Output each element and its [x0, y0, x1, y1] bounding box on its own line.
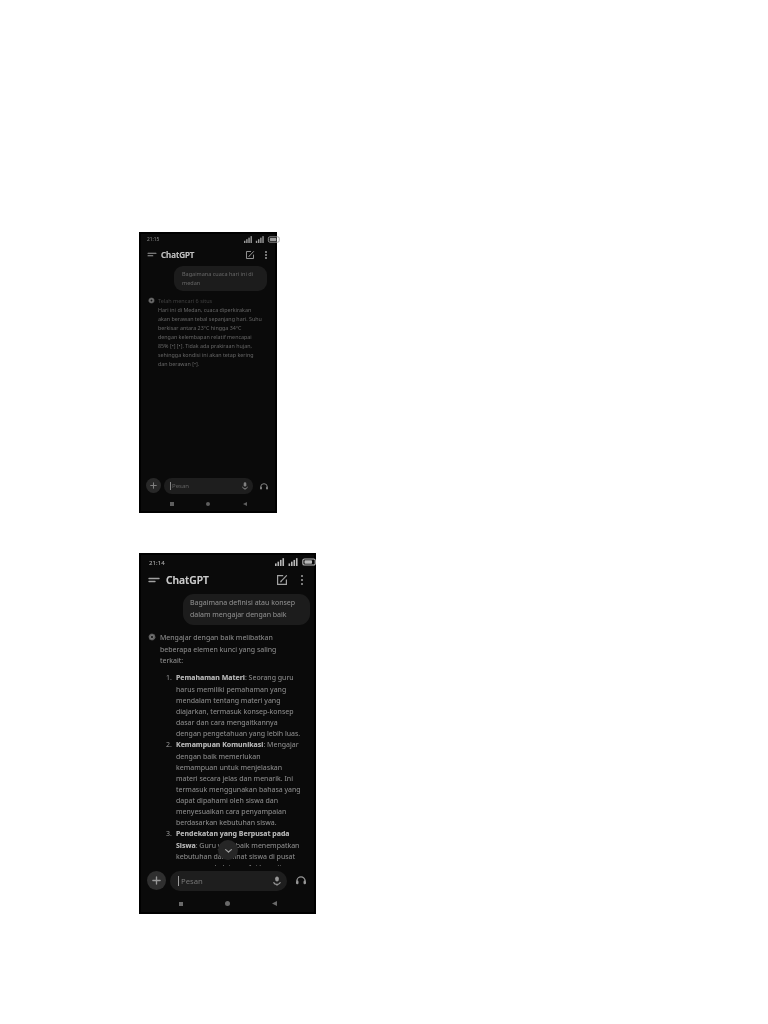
button[interactable]: Voice mode: [258, 480, 270, 492]
button[interactable]: Pesan: [170, 871, 287, 891]
button[interactable]: Recents: [173, 896, 188, 911]
staticText: Pendekatan yang Berpusat pada Siswa: Gur…: [176, 829, 301, 866]
staticText: Hari ini di Medan, cuaca diperkirakan ak…: [158, 306, 262, 368]
button[interactable]: Scroll to bottom: [218, 840, 238, 860]
button[interactable]: More options: [260, 249, 271, 260]
staticText: ChatGPT: [166, 573, 209, 587]
button[interactable]: Home: [202, 498, 214, 510]
button[interactable]: More options: [295, 573, 309, 587]
staticText: Pesan: [172, 482, 189, 490]
staticText: Bagaimana cuaca hari ini di medan: [182, 270, 261, 286]
button[interactable]: Back: [267, 896, 282, 911]
staticText: 2.: [166, 740, 172, 750]
button[interactable]: Pesan: [164, 478, 253, 494]
button[interactable]: Recents: [166, 498, 178, 510]
staticText: 1.: [166, 673, 172, 683]
button[interactable]: Voice mode: [293, 873, 308, 888]
staticText: Telah mencari 6 situs: [158, 297, 213, 304]
button[interactable]: New chat: [273, 571, 290, 588]
staticText: Mengajar dengan baik melibatkan beberapa…: [160, 633, 278, 665]
staticText: Kemampuan Komunikasi: Mengajar dengan ba…: [176, 740, 301, 827]
staticText: 3.: [166, 829, 172, 839]
staticText: Bagaimana definisi atau konsep dalam men…: [190, 598, 305, 619]
button[interactable]: Menu: [147, 573, 161, 587]
button[interactable]: Home: [220, 896, 235, 911]
staticText: 21:14: [149, 558, 165, 566]
staticText: ChatGPT: [161, 249, 195, 260]
button[interactable]: New chat: [243, 248, 256, 261]
button[interactable]: Back: [239, 498, 251, 510]
staticText: Pemahaman Materi: Seorang guru harus mem…: [176, 673, 301, 738]
staticText: Pesan: [181, 876, 203, 886]
staticText: 21:15: [147, 236, 160, 243]
button[interactable]: Bagaimana definisi atau konsep dalam men…: [183, 594, 310, 625]
button[interactable]: Add attachment: [147, 871, 166, 890]
button[interactable]: Bagaimana cuaca hari ini di medan: [174, 266, 267, 291]
button[interactable]: Add attachment: [146, 478, 161, 493]
button[interactable]: Menu: [146, 249, 157, 260]
